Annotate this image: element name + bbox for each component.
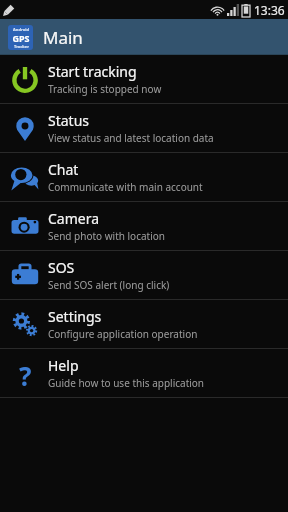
staticText: Send SOS alert (long click)	[48, 278, 170, 292]
staticText: Camera	[48, 209, 100, 228]
button[interactable]: Settings	[0, 300, 288, 348]
staticText: Send photo with location	[48, 229, 165, 243]
staticText: Settings	[48, 307, 102, 326]
staticText: Main	[43, 26, 83, 49]
other: SOS	[10, 260, 40, 290]
staticText: Tracker	[14, 44, 29, 49]
staticText: SOS	[48, 258, 75, 277]
other: Camera	[10, 211, 40, 241]
staticText: Communicate with main account	[48, 180, 203, 194]
staticText: Configure application operation	[48, 327, 198, 341]
staticText: Tracking is stopped now	[48, 82, 162, 96]
button[interactable]: Chat	[0, 153, 288, 201]
other: Help	[10, 358, 40, 388]
button[interactable]: Help	[0, 349, 288, 397]
staticText: Status	[48, 111, 90, 130]
other: Chat	[10, 162, 40, 192]
other: Start tracking	[10, 64, 40, 94]
staticText: Guide how to use this application	[48, 376, 205, 390]
staticText: Android	[13, 27, 29, 32]
button[interactable]: Status	[0, 104, 288, 152]
staticText: ?	[19, 358, 32, 388]
other: Status	[10, 113, 40, 143]
button[interactable]: Start tracking	[0, 55, 288, 103]
staticText: Start tracking	[48, 62, 137, 81]
staticText: GPS	[12, 32, 30, 44]
staticText: Chat	[48, 160, 79, 179]
staticText: Help	[48, 356, 79, 375]
staticText: View status and latest location data	[48, 131, 214, 145]
button[interactable]: Camera	[0, 202, 288, 250]
button[interactable]: SOS	[0, 251, 288, 299]
other: Settings	[10, 309, 40, 339]
staticText: 13:36	[254, 2, 285, 18]
